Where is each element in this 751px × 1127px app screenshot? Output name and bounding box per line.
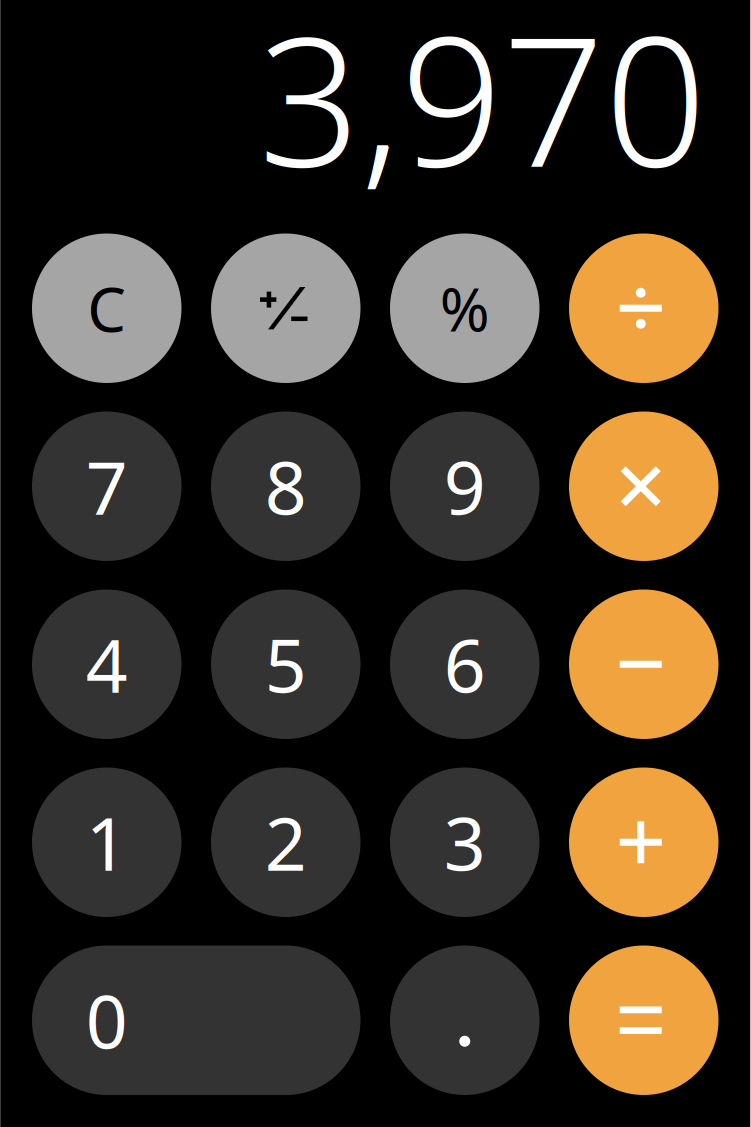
button[interactable]: 1 xyxy=(32,767,181,917)
button[interactable]: Clear xyxy=(32,233,181,383)
button[interactable]: 9 xyxy=(390,411,539,561)
staticText: 0 xyxy=(86,972,128,1069)
button[interactable]: Decimal point xyxy=(390,945,539,1095)
button[interactable]: 0 xyxy=(32,945,360,1095)
staticText: 4 xyxy=(86,616,128,713)
button[interactable]: 6 xyxy=(390,589,539,739)
button[interactable]: Minus xyxy=(569,589,718,739)
staticText: 9 xyxy=(444,438,486,535)
button[interactable]: 3 xyxy=(390,767,539,917)
button[interactable]: Equals xyxy=(569,945,718,1095)
button[interactable]: Divide xyxy=(569,233,718,383)
staticText: 6 xyxy=(444,616,486,713)
staticText: 3 xyxy=(444,794,486,891)
staticText: % xyxy=(440,268,490,348)
button[interactable]: 2 xyxy=(211,767,360,917)
staticText: 7 xyxy=(86,438,128,535)
staticText: 5 xyxy=(265,616,307,713)
button[interactable]: Plus xyxy=(569,767,718,917)
button[interactable]: Percent xyxy=(390,233,539,383)
button[interactable]: 8 xyxy=(211,411,360,561)
staticText: 2 xyxy=(265,794,307,891)
staticText: C xyxy=(87,267,126,349)
staticText: 8 xyxy=(265,438,307,535)
button[interactable]: 5 xyxy=(211,589,360,739)
button[interactable]: 4 xyxy=(32,589,181,739)
button[interactable]: Plus minus xyxy=(211,233,360,383)
staticText: 3,970 xyxy=(258,0,706,215)
button[interactable]: 7 xyxy=(32,411,181,561)
staticText: 1 xyxy=(86,794,128,891)
button[interactable]: Multiply xyxy=(569,411,718,561)
